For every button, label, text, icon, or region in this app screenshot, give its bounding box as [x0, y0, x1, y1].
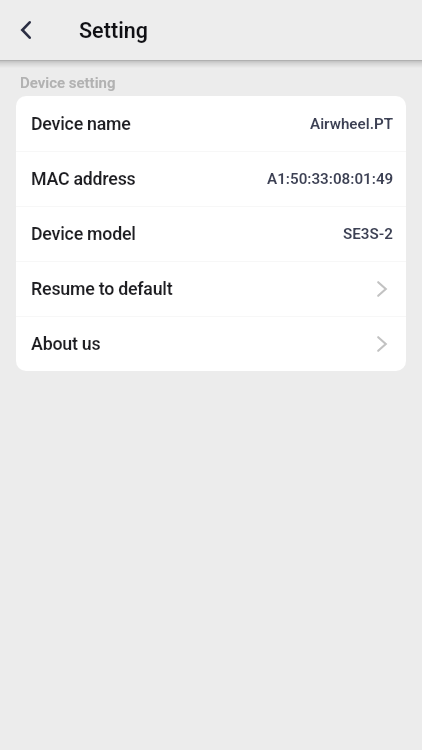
staticText: Resume to default: [31, 278, 173, 299]
staticText: A1:50:33:08:01:49: [267, 170, 394, 188]
staticText: MAC address: [31, 168, 136, 189]
button[interactable]: Device model: [16, 206, 406, 261]
button[interactable]: MAC address: [16, 151, 406, 206]
staticText: SE3S-2: [343, 225, 394, 243]
button[interactable]: About us: [16, 316, 406, 371]
staticText: Airwheel.PT: [310, 115, 394, 133]
staticText: Device name: [31, 113, 131, 134]
button[interactable]: Back: [10, 14, 42, 46]
button[interactable]: Device name: [16, 96, 406, 151]
staticText: About us: [31, 333, 101, 354]
button[interactable]: Resume to default: [16, 261, 406, 316]
staticText: Device model: [31, 223, 136, 244]
staticText: Setting: [79, 18, 148, 43]
staticText: Device setting: [20, 74, 116, 92]
